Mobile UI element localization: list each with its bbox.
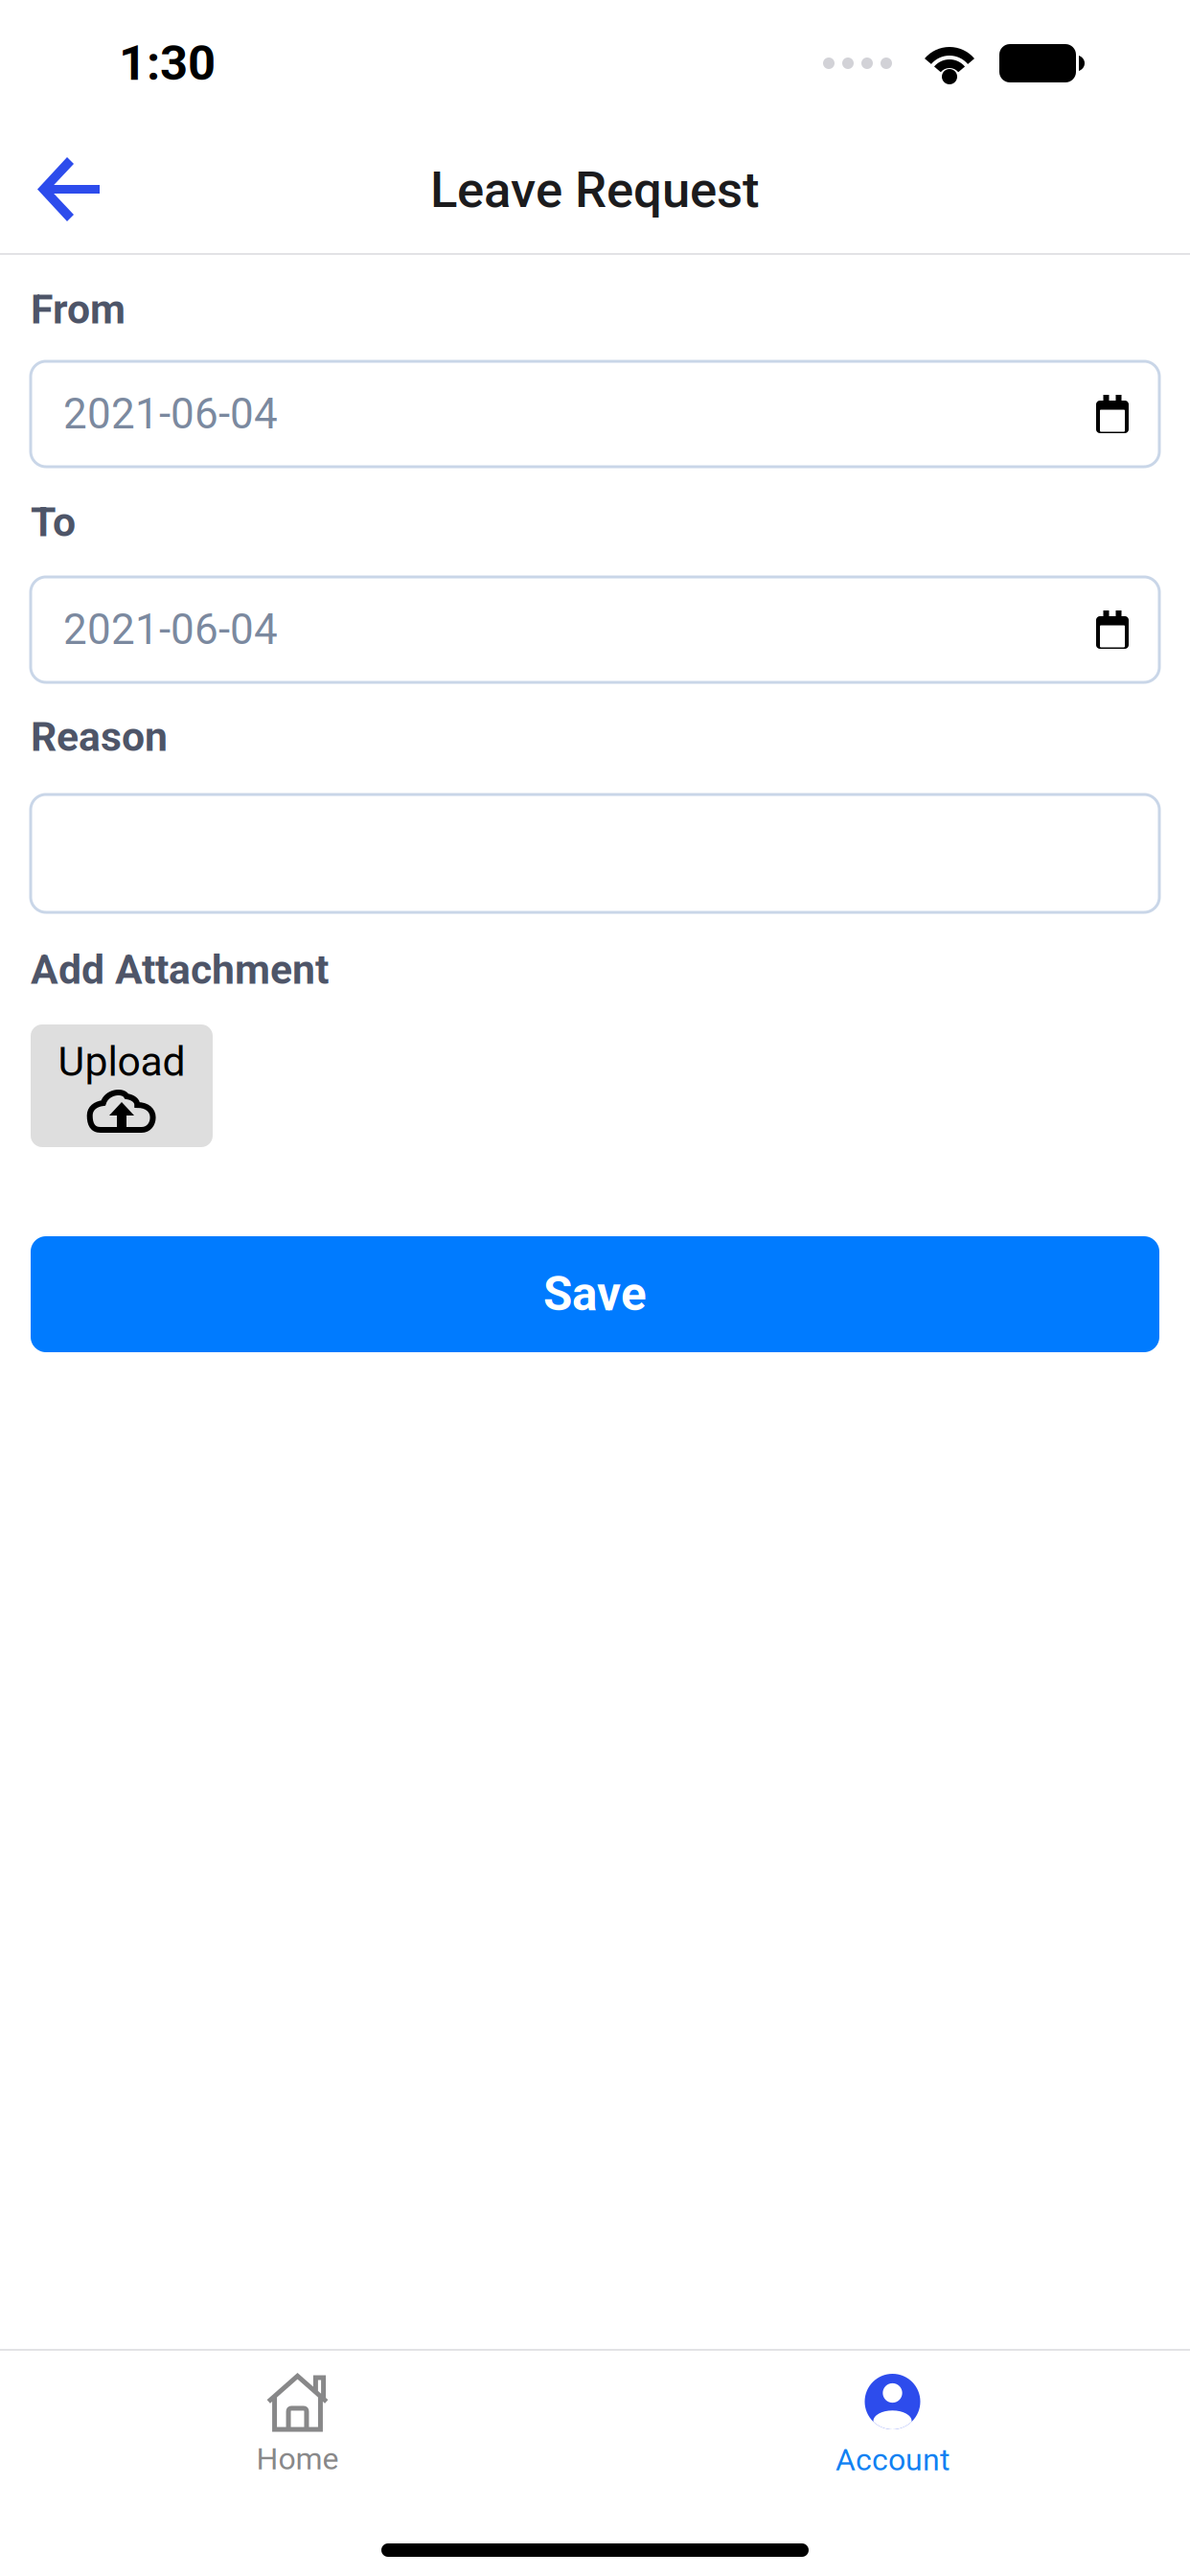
button[interactable]: Home (0, 2351, 595, 2499)
button[interactable]: Back (0, 126, 142, 253)
button[interactable]: Account (595, 2351, 1190, 2499)
staticText: To (31, 498, 76, 546)
staticText: Home (256, 2441, 339, 2477)
button[interactable]: 2021-06-04 (31, 361, 1159, 467)
staticText: From (31, 286, 126, 333)
staticText: Leave Request (430, 160, 760, 219)
button[interactable]: 2021-06-04 (31, 577, 1159, 682)
staticText: Upload (58, 1038, 185, 1086)
button[interactable]: Upload (31, 1024, 213, 1147)
staticText: Add Attachment (31, 946, 329, 994)
staticText: 1:30 (119, 35, 216, 92)
staticText: 2021-06-04 (63, 389, 278, 439)
staticText: Save (543, 1267, 647, 1322)
button[interactable] (31, 794, 1159, 912)
staticText: Account (835, 2442, 950, 2478)
staticText: 2021-06-04 (63, 605, 278, 654)
button[interactable]: Save (31, 1236, 1159, 1352)
staticText: Reason (31, 713, 168, 761)
